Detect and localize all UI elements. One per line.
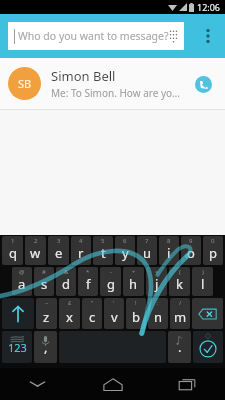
button[interactable]: 6 [115, 236, 135, 265]
button[interactable]: ) [192, 267, 213, 296]
staticText: / [179, 299, 182, 307]
button[interactable]: Dialpad [169, 26, 178, 46]
button[interactable]: 9 [181, 236, 201, 265]
button[interactable]: enter [193, 331, 223, 363]
button[interactable]: / [170, 298, 190, 329]
staticText: h [129, 275, 138, 293]
button[interactable]: - [100, 267, 121, 296]
staticText: Me: To Simon. How are yo… [51, 86, 180, 100]
staticText: y [122, 244, 129, 262]
staticText: SB [18, 76, 32, 91]
staticText: e [55, 244, 63, 262]
staticText: c [89, 308, 96, 326]
staticText: , [44, 338, 48, 356]
button[interactable]: ( [169, 267, 190, 296]
staticText: ! [135, 299, 137, 307]
button[interactable]: 3 [48, 236, 69, 265]
button[interactable]: Who do you want to message? [8, 22, 184, 50]
staticText: u [143, 244, 152, 262]
button[interactable]: , [34, 331, 57, 363]
staticText: t [101, 244, 106, 262]
staticText: q [9, 244, 17, 262]
staticText: j [155, 275, 159, 293]
button[interactable]: Call [189, 70, 217, 98]
staticText: 8 [167, 237, 171, 245]
staticText: + [132, 268, 136, 276]
staticText: : [157, 299, 159, 307]
staticText: 12:06 [197, 1, 221, 13]
staticText: ) [202, 268, 204, 276]
staticText: p [209, 244, 217, 262]
button[interactable]: : [148, 298, 168, 329]
button[interactable]: 0 [203, 236, 223, 265]
button[interactable]: Hide keyboard [0, 368, 75, 400]
staticText: z [43, 308, 50, 326]
button[interactable]: . [168, 331, 191, 363]
staticText: £ [68, 299, 72, 307]
button[interactable]: ~ [36, 298, 57, 329]
staticText: w [30, 244, 41, 262]
button[interactable]: Home [75, 368, 150, 400]
staticText: l [201, 275, 205, 293]
staticText: m [174, 308, 187, 326]
button[interactable]: + [123, 267, 144, 296]
button[interactable]: ! [126, 298, 146, 329]
button[interactable]: & [56, 267, 76, 296]
staticText: Who do you want to message? [18, 29, 169, 43]
staticText: k [176, 275, 183, 293]
staticText: 9 [189, 237, 193, 245]
staticText: g [107, 275, 115, 293]
staticText: 5 [101, 237, 105, 245]
staticText: - [110, 268, 112, 276]
staticText: d [62, 275, 70, 293]
staticText: ~ [45, 299, 49, 307]
staticText: " [91, 299, 94, 307]
staticText: x [66, 308, 73, 326]
button[interactable]: ' [104, 298, 124, 329]
button[interactable]: space [59, 331, 166, 363]
staticText: 1 [11, 237, 15, 245]
button[interactable]: del [192, 298, 223, 329]
staticText: n [154, 308, 163, 326]
button[interactable]: shift [2, 298, 34, 329]
button[interactable]: SB [0, 58, 225, 109]
staticText: 2 [34, 237, 38, 245]
staticText: b [132, 308, 140, 326]
button[interactable]: @ [12, 267, 32, 296]
staticText: @ [19, 268, 25, 276]
button[interactable]: 8 [159, 236, 179, 265]
staticText: # [42, 268, 46, 276]
staticText: Simon Bell [51, 67, 116, 85]
button[interactable]: = [146, 267, 167, 296]
staticText: 7 [145, 237, 149, 245]
button[interactable]: Recents [150, 368, 225, 400]
staticText: ( [179, 268, 181, 276]
staticText: 6 [123, 237, 127, 245]
button[interactable]: 2 [25, 236, 46, 265]
button[interactable]: More options [191, 14, 225, 58]
staticText: * [86, 268, 90, 276]
staticText: ' [113, 299, 115, 307]
button[interactable]: 123 [2, 331, 32, 363]
staticText: o [187, 244, 195, 262]
staticText: a [18, 275, 26, 293]
staticText: f [86, 275, 91, 293]
staticText: & [64, 268, 69, 276]
staticText: . [178, 338, 182, 356]
staticText: i [167, 244, 171, 262]
button[interactable]: # [34, 267, 54, 296]
staticText: = [155, 268, 159, 276]
staticText: 4 [79, 237, 83, 245]
button[interactable]: £ [59, 298, 80, 329]
staticText: 123 [8, 340, 27, 355]
button[interactable]: 7 [137, 236, 157, 265]
staticText: r [78, 244, 84, 262]
staticText: v [111, 308, 118, 326]
button[interactable]: " [82, 298, 102, 329]
staticText: 3 [57, 237, 61, 245]
button[interactable]: * [78, 267, 98, 296]
button[interactable]: 5 [93, 236, 113, 265]
button[interactable]: 4 [71, 236, 91, 265]
staticText: 0 [211, 237, 215, 245]
button[interactable]: 1 [2, 236, 23, 265]
